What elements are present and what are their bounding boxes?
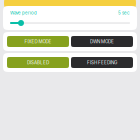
staticText: DISABLED (27, 60, 49, 65)
button[interactable]: FIXED MODE (7, 36, 69, 47)
staticText: FISH FEEDING (87, 60, 117, 65)
staticText: Wave period (10, 10, 37, 16)
button[interactable]: FISH FEEDING (71, 57, 133, 68)
staticText: 5 sec (118, 10, 130, 16)
staticText: FIXED MODE (24, 39, 51, 44)
button[interactable]: DWN MODE (71, 36, 133, 47)
button[interactable]: DISABLED (7, 57, 69, 68)
staticText: DWN MODE (90, 39, 114, 44)
